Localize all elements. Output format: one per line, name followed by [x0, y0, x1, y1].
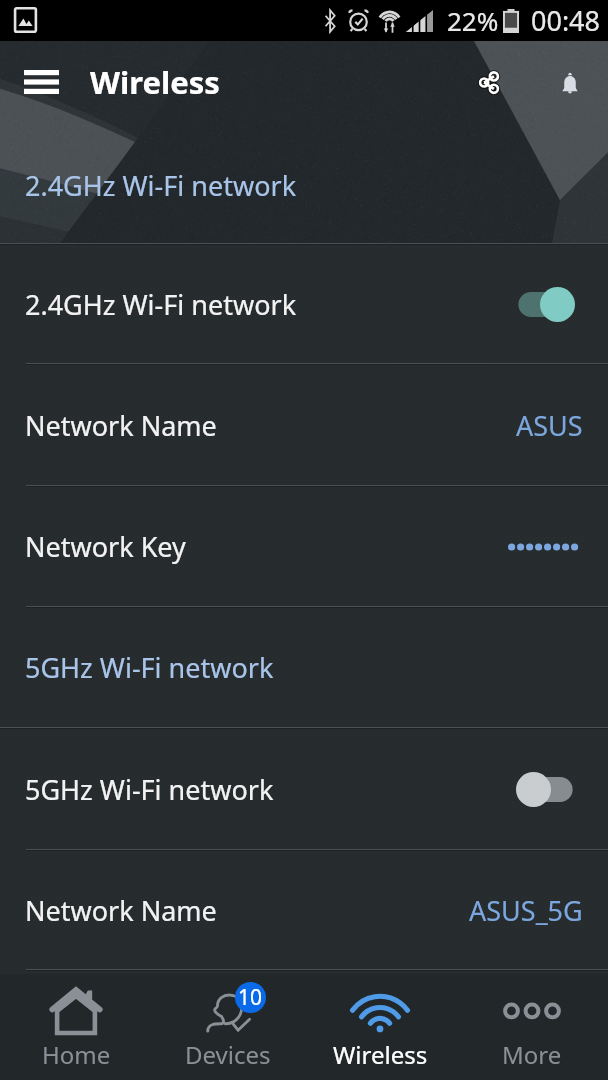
button[interactable]: Share — [445, 41, 532, 123]
staticText: Wireless — [90, 61, 220, 103]
staticText: Network Key — [25, 528, 186, 565]
staticText: Network Name — [25, 407, 217, 444]
button[interactable]: 2.4GHz Wi-Fi network — [0, 245, 608, 363]
button[interactable]: Home — [0, 974, 152, 1080]
button[interactable]: Notifications — [532, 41, 608, 123]
staticText: Devices — [185, 1038, 271, 1071]
button[interactable]: More — [456, 974, 608, 1080]
staticText: More — [502, 1038, 562, 1071]
button[interactable]: 10 — [152, 974, 304, 1080]
staticText: 2.4GHz Wi-Fi network — [25, 286, 297, 323]
button[interactable]: Network Name — [0, 851, 608, 969]
staticText: 10 — [238, 983, 263, 1012]
button[interactable]: Network Name — [0, 365, 608, 485]
staticText: ASUS — [516, 407, 583, 444]
staticText: Network Name — [25, 892, 217, 929]
staticText: Wireless — [333, 1038, 428, 1071]
button[interactable]: Wireless — [304, 974, 456, 1080]
staticText: 00:48 — [531, 2, 601, 39]
staticText: ASUS_5G — [469, 892, 583, 929]
staticText: 5GHz Wi-Fi network — [25, 649, 274, 686]
staticText: Home — [42, 1038, 111, 1071]
staticText: 22% — [447, 3, 499, 38]
staticText: 2.4GHz Wi-Fi network — [25, 167, 297, 204]
button[interactable]: Menu — [0, 41, 82, 123]
staticText: 5GHz Wi-Fi network — [25, 771, 274, 808]
button[interactable]: 5GHz Wi-Fi network — [0, 729, 608, 849]
button[interactable]: Network Key — [0, 487, 608, 606]
